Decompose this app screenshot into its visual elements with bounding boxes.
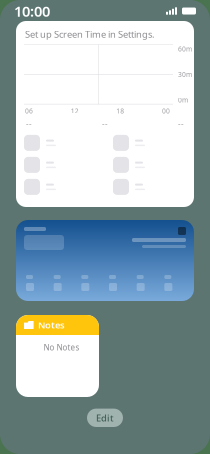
staticText: 0m <box>178 95 188 104</box>
staticText: 60m <box>178 44 192 53</box>
staticText: 30m <box>178 70 192 79</box>
staticText: 06 <box>25 106 33 115</box>
staticText: Edit <box>96 412 114 424</box>
staticText: -- <box>102 118 108 129</box>
staticText: -- <box>26 118 32 129</box>
staticText: 10:00 <box>14 1 50 21</box>
staticText: 00 <box>162 106 170 115</box>
staticText: 18 <box>116 106 124 115</box>
staticText: Set up Screen Time in Settings. <box>25 28 155 40</box>
staticText: No Notes <box>43 342 79 353</box>
button[interactable]: Edit <box>87 409 123 427</box>
staticText: Notes <box>38 319 65 331</box>
staticText: -- <box>178 118 184 129</box>
staticText: 12 <box>71 106 79 115</box>
